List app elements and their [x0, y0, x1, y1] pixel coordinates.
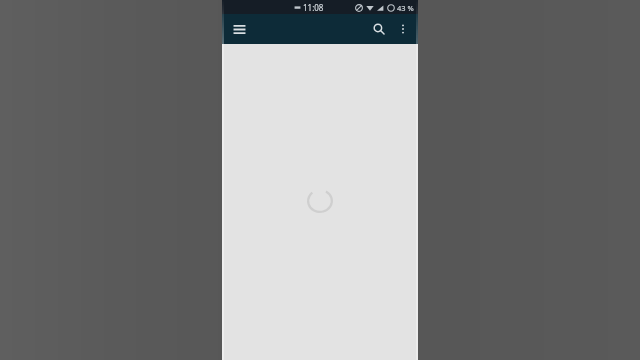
button[interactable]: Open navigation drawer	[226, 16, 252, 42]
staticText: 11:08	[303, 2, 324, 13]
staticText: 43 %	[397, 3, 414, 13]
button[interactable]: Search	[366, 16, 392, 42]
button[interactable]: More options	[392, 18, 414, 40]
